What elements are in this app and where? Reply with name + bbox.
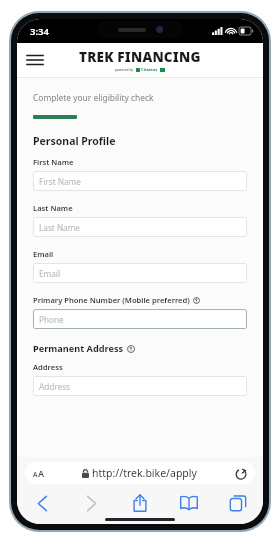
button[interactable]: First Name [33,171,247,191]
button[interactable]: Forward [78,491,104,515]
staticText: Last Name [33,203,73,213]
button[interactable]: Email [33,263,247,283]
button[interactable]: A [25,462,255,484]
button[interactable]: Back [29,491,55,515]
staticText: Address [33,362,63,372]
staticText: Primary Phone Number (Mobile preferred) [33,295,190,305]
button[interactable]: Phone [33,309,247,329]
staticText: Citizens [141,67,158,73]
staticText: Complete your eligibility check [33,92,154,103]
staticText: First Name [39,176,81,187]
staticText: Address [39,381,70,392]
staticText: Email [33,249,54,259]
staticText: powered by [115,68,134,72]
button[interactable]: Last Name [33,217,247,237]
staticText: Permanent Address [33,342,124,355]
staticText: First Name [33,157,74,167]
staticText: http://trek.bike/apply [92,466,197,480]
staticText: A [33,470,38,479]
staticText: Email [39,268,61,279]
staticText: A [38,467,45,479]
staticText: Personal Profile [33,134,116,148]
button[interactable]: Address [33,376,247,396]
button[interactable]: Bookmarks [176,491,202,515]
button[interactable]: Share [127,491,153,515]
staticText: 3:34 [30,25,49,38]
staticText: TREK FINANCING [79,48,201,66]
staticText: Last Name [39,222,80,233]
button[interactable]: Menu [23,48,47,72]
button[interactable]: Tabs [225,491,251,515]
staticText: Phone [39,314,64,325]
